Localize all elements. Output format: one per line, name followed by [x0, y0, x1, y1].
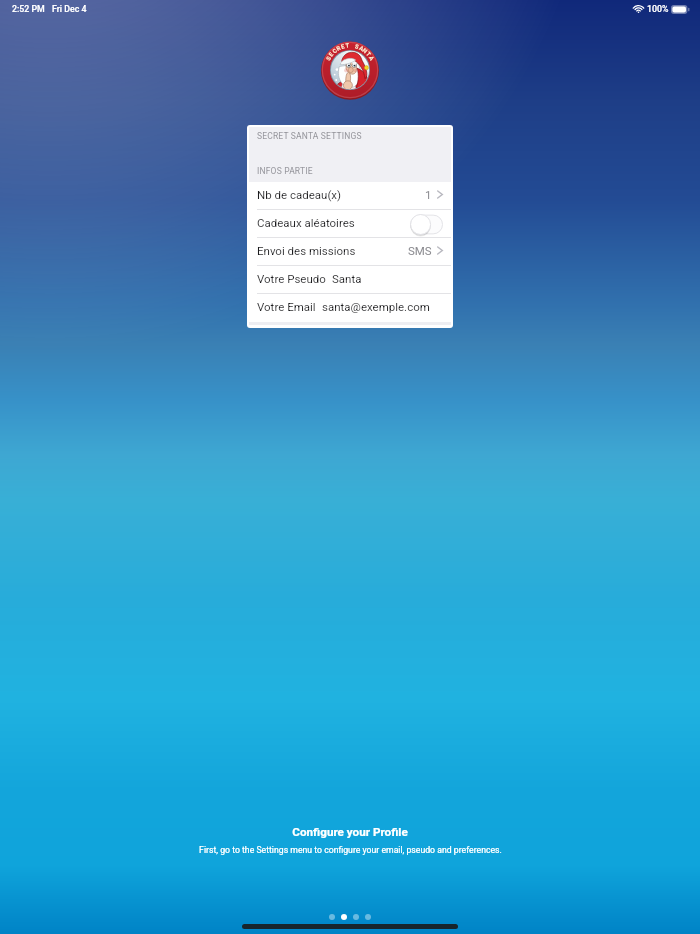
other: Secret Santa logo	[321, 41, 379, 99]
button[interactable]: Cadeaux aleatoires toggle	[410, 214, 443, 235]
staticText: Votre Email	[257, 300, 316, 313]
staticText: Fri Dec 4	[52, 4, 87, 14]
button[interactable]: Votre Email	[249, 294, 451, 322]
button[interactable]: Cadeaux aléatoires	[249, 210, 451, 238]
staticText: SECRET SANTA SETTINGS	[257, 131, 362, 141]
staticText: Envoi des missions	[257, 244, 356, 257]
staticText: Cadeaux aléatoires	[257, 216, 355, 229]
staticText: 100%	[647, 4, 669, 14]
staticText: INFOS PARTIE	[257, 166, 313, 176]
staticText: Votre Pseudo	[257, 272, 326, 285]
button[interactable]: Envoi des missions	[249, 238, 451, 266]
staticText: santa@exemple.com	[322, 300, 430, 313]
staticText: Santa	[332, 272, 362, 285]
button[interactable]: Nb de cadeau(x)	[249, 182, 451, 210]
button[interactable]: Votre Pseudo	[249, 266, 451, 294]
staticText: 1	[425, 188, 432, 201]
staticText: First, go to the Settings menu to config…	[199, 845, 502, 855]
staticText: 2:52 PM	[12, 4, 45, 14]
staticText: Configure your Profile	[292, 825, 408, 839]
staticText: SMS	[408, 244, 432, 257]
staticText: Nb de cadeau(x)	[257, 188, 342, 201]
